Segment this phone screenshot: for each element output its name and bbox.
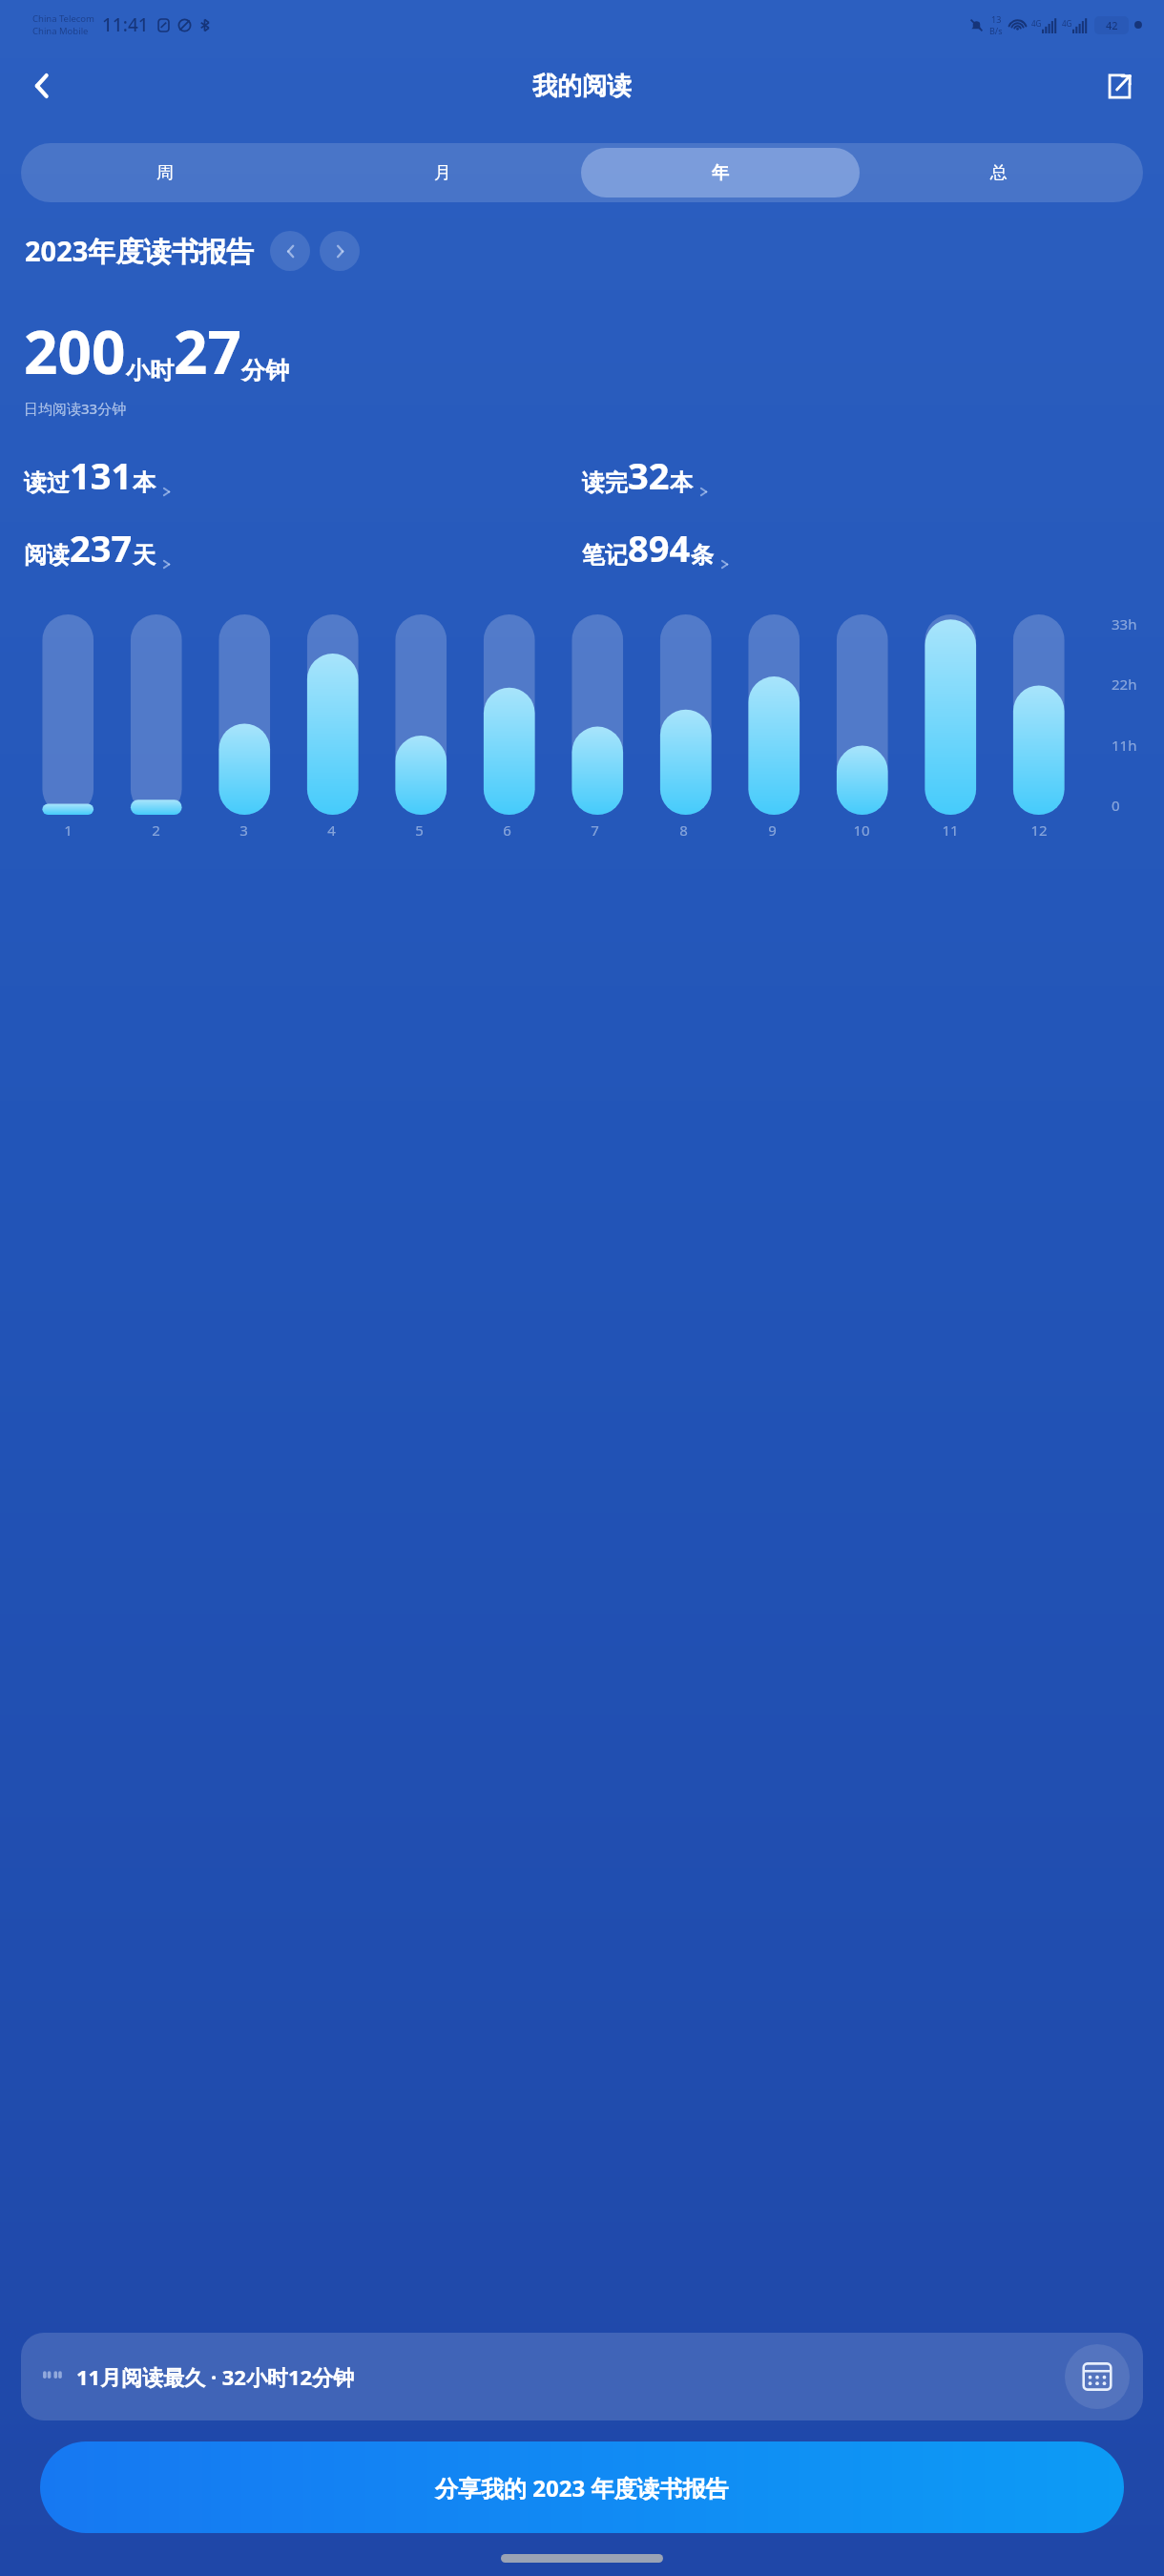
staticText: 22h: [1112, 675, 1137, 694]
button[interactable]: Next year: [320, 231, 360, 271]
staticText: 894: [628, 523, 691, 572]
staticText: 10: [853, 821, 870, 840]
staticText: 8: [679, 821, 688, 840]
staticText: 总: [990, 162, 1008, 184]
staticText: 阅读: [24, 541, 70, 570]
staticText: 4G: [1031, 18, 1042, 29]
button[interactable]: 总: [860, 148, 1138, 197]
staticText: 9: [768, 821, 777, 840]
staticText: 天: [133, 541, 156, 570]
staticText: 7: [591, 821, 599, 840]
button[interactable]: Share: [1091, 58, 1147, 114]
button[interactable]: 读完: [582, 450, 1140, 500]
button[interactable]: Previous year: [270, 231, 310, 271]
staticText: 11h: [1112, 736, 1137, 755]
staticText: 6: [503, 821, 511, 840]
button[interactable]: 读过: [24, 450, 582, 500]
staticText: 12: [1030, 821, 1048, 840]
staticText: 读过: [24, 468, 70, 497]
staticText: 1: [64, 821, 73, 840]
staticText: 月: [434, 162, 451, 184]
button[interactable]: Calendar: [1065, 2344, 1130, 2409]
button[interactable]: 分享我的 2023 年度读书报告: [40, 2441, 1124, 2533]
button[interactable]: Back: [13, 57, 71, 114]
staticText: 分享我的 2023 年度读书报告: [435, 2472, 729, 2503]
staticText: 4: [327, 821, 336, 840]
staticText: 4G: [1062, 18, 1072, 29]
staticText: 237: [70, 523, 133, 572]
staticText: 我的阅读: [532, 71, 632, 102]
staticText: 条: [691, 541, 714, 570]
staticText: 日均阅读33分钟: [24, 399, 127, 418]
staticText: 11:41: [102, 12, 149, 37]
staticText: 本: [133, 468, 156, 497]
staticText: 年: [712, 162, 729, 184]
button[interactable]: 阅读: [24, 523, 582, 572]
staticText: 0: [1112, 796, 1120, 815]
staticText: 42: [1106, 18, 1118, 32]
staticText: 5: [415, 821, 424, 840]
button[interactable]: 月: [303, 148, 581, 197]
staticText: 131: [70, 450, 133, 500]
staticText: 2: [152, 821, 160, 840]
staticText: 11: [942, 821, 959, 840]
staticText: B/s: [989, 25, 1003, 36]
staticText: 200: [24, 311, 126, 391]
staticText: 13: [991, 13, 1002, 25]
staticText: 笔记: [582, 541, 628, 570]
staticText: 33h: [1112, 614, 1137, 634]
button[interactable]: 11月阅读最久 · 32小时12分钟: [21, 2333, 1143, 2420]
staticText: 小时: [126, 356, 174, 385]
button[interactable]: 周: [26, 148, 303, 197]
button[interactable]: 笔记: [582, 523, 1140, 572]
staticText: 分钟: [241, 356, 289, 385]
button[interactable]: 年: [581, 148, 860, 197]
staticText: 2023年度读书报告: [25, 232, 255, 270]
staticText: 3: [239, 821, 248, 840]
staticText: 读完: [582, 468, 628, 497]
staticText: 周: [156, 162, 174, 184]
staticText: 11月阅读最久 · 32小时12分钟: [76, 2362, 355, 2391]
staticText: China Mobile: [32, 25, 89, 37]
staticText: China Telecom: [32, 12, 94, 25]
staticText: 27: [174, 311, 241, 391]
staticText: 32: [628, 450, 670, 500]
staticText: 本: [670, 468, 693, 497]
